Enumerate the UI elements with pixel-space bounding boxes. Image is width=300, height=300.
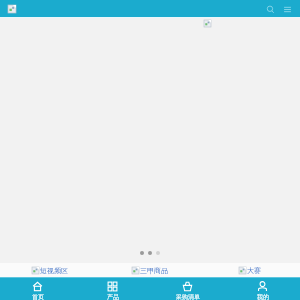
staticText: 首页 <box>32 293 44 300</box>
button[interactable]: 三甲商品 <box>100 266 200 275</box>
staticText: 我的 <box>257 293 269 300</box>
button[interactable]: 首页 <box>0 278 75 300</box>
staticText: 三甲商品 <box>140 266 168 275</box>
staticText: 采购清单 <box>176 293 200 300</box>
button[interactable]: 短视频区 <box>0 266 100 275</box>
button[interactable]: 我的 <box>225 278 300 300</box>
button[interactable]: Search <box>263 2 277 16</box>
button[interactable]: 大赛 <box>200 266 300 275</box>
button[interactable]: 采购清单 <box>150 278 225 300</box>
button[interactable]: Menu <box>280 2 294 16</box>
button[interactable]: Banner image <box>204 20 211 27</box>
staticText: 短视频区 <box>40 266 68 275</box>
button[interactable]: 产品 <box>75 278 150 300</box>
staticText: 大赛 <box>247 266 261 275</box>
staticText: 产品 <box>107 293 119 300</box>
button[interactable]: Logo, home <box>8 5 16 13</box>
